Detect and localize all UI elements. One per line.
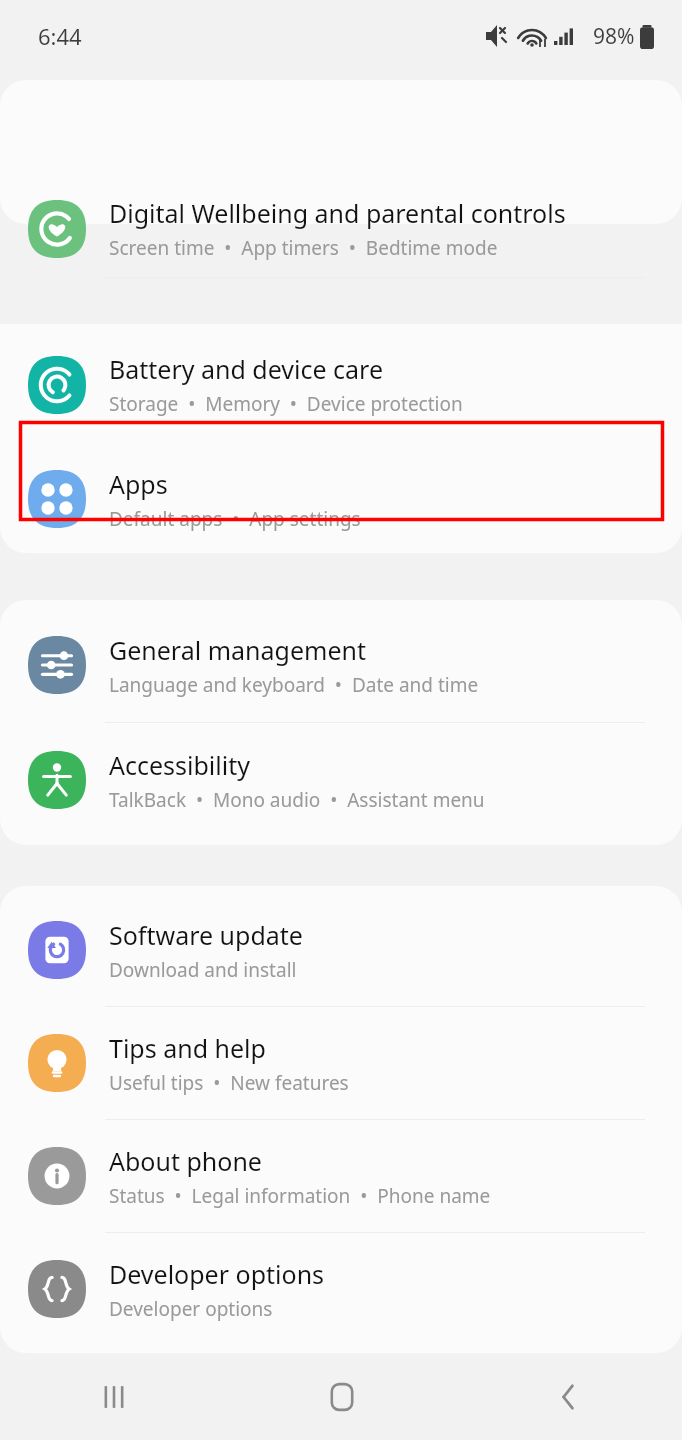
staticText: Screen time • App timers • Bedtime mode [109, 235, 498, 261]
button[interactable]: Software update [0, 894, 682, 1006]
staticText: General management [109, 633, 366, 667]
staticText: Language and keyboard • Date and time [109, 672, 479, 698]
staticText: Useful tips • New features [109, 1070, 349, 1096]
staticText: 98% [593, 22, 635, 51]
button[interactable]: Back [455, 1353, 682, 1440]
button[interactable]: Apps [0, 446, 682, 552]
staticText: Digital Wellbeing and parental controls [109, 196, 566, 230]
staticText: Storage • Memory • Device protection [109, 391, 463, 417]
button[interactable]: Recent apps [0, 1353, 228, 1440]
button[interactable]: About phone [0, 1120, 682, 1232]
staticText: 6:44 [38, 21, 82, 51]
staticText: Tips and help [109, 1031, 266, 1065]
staticText: Default apps • App settings [109, 506, 361, 532]
staticText: Accessibility [109, 748, 250, 782]
staticText: Download and install [109, 957, 297, 983]
button[interactable]: Developer options [0, 1233, 682, 1345]
staticText: Battery and device care [109, 352, 384, 386]
staticText: Apps [109, 467, 168, 501]
button[interactable]: Battery and device care [0, 324, 682, 445]
button[interactable]: Tips and help [0, 1007, 682, 1119]
staticText: Developer options [109, 1296, 273, 1322]
staticText: Status • Legal information • Phone name [109, 1183, 491, 1209]
button[interactable]: General management [0, 608, 682, 722]
button[interactable]: Home [228, 1353, 455, 1440]
button[interactable]: Accessibility [0, 723, 682, 837]
staticText: Developer options [109, 1257, 325, 1291]
staticText: About phone [109, 1144, 262, 1178]
button[interactable]: Digital Wellbeing and parental controls [0, 180, 682, 277]
staticText: TalkBack • Mono audio • Assistant menu [109, 787, 485, 813]
staticText: Software update [109, 918, 303, 952]
